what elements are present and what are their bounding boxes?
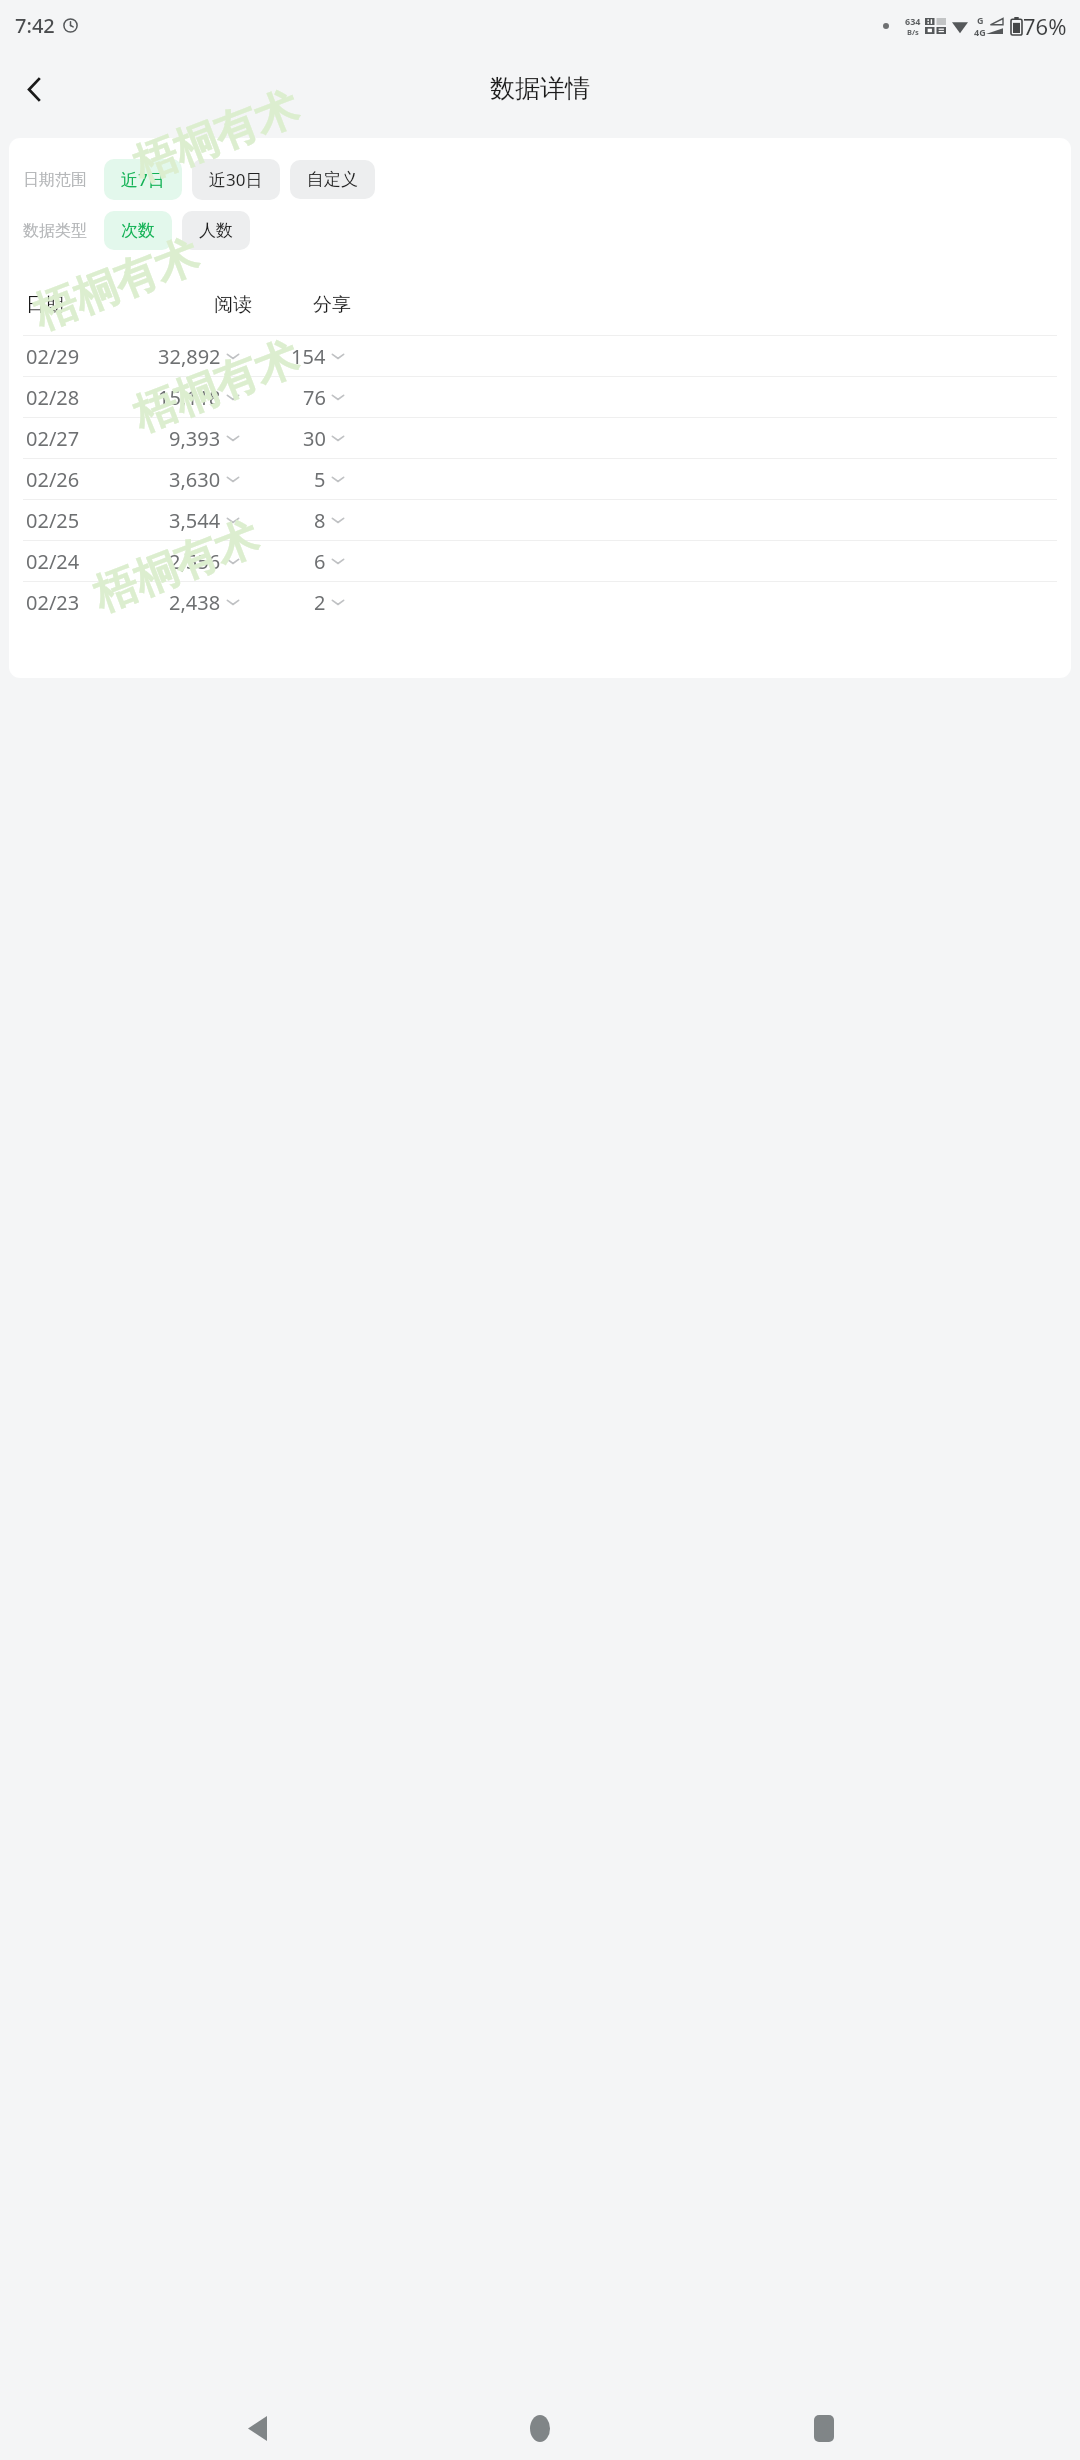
staticText: 32,892 <box>158 343 221 370</box>
staticText: 76 <box>303 384 326 411</box>
staticText: 634 <box>905 15 921 27</box>
staticText: 日期范围 <box>23 170 87 190</box>
staticText: 9,393 <box>169 425 221 452</box>
staticText: 次数 <box>121 220 155 241</box>
staticText: 2 <box>314 589 326 616</box>
staticText: 近30日 <box>209 168 263 191</box>
staticText: 02/28 <box>26 384 80 411</box>
button[interactable]: Recents <box>797 2401 851 2455</box>
staticText: 近7日 <box>121 168 165 191</box>
staticText: 76% <box>1023 11 1067 41</box>
staticText: 梧桐有术 <box>86 511 266 623</box>
staticText: G <box>977 14 984 26</box>
button[interactable]: Home <box>513 2401 567 2455</box>
button[interactable]: 02/26 <box>9 459 1071 499</box>
staticText: 4G <box>974 26 986 38</box>
staticText: B/s <box>907 27 919 37</box>
staticText: 02/27 <box>26 425 80 452</box>
staticText: 梧桐有术 <box>126 81 306 193</box>
button[interactable]: 人数 <box>182 211 250 250</box>
staticText: 8 <box>314 507 326 534</box>
button[interactable]: 02/25 <box>9 500 1071 540</box>
button[interactable]: 02/27 <box>9 418 1071 458</box>
staticText: 数据类型 <box>23 221 87 241</box>
button[interactable]: Back <box>4 58 66 120</box>
staticText: 30 <box>303 425 326 452</box>
staticText: 阅读 <box>214 293 252 317</box>
staticText: 02/26 <box>26 466 80 493</box>
staticText: 3,630 <box>169 466 221 493</box>
button[interactable]: 自定义 <box>290 160 375 199</box>
staticText: 02/29 <box>26 343 80 370</box>
button[interactable]: 02/28 <box>9 377 1071 417</box>
button[interactable]: 次数 <box>104 211 172 250</box>
staticText: 7:42 <box>15 12 55 39</box>
staticText: 日期 <box>26 293 64 317</box>
staticText: 数据详情 <box>490 73 590 104</box>
staticText: 自定义 <box>307 169 358 190</box>
staticText: 梧桐有术 <box>126 331 306 443</box>
staticText: 3,544 <box>169 507 221 534</box>
staticText: 5 <box>314 466 326 493</box>
button[interactable]: 02/29 <box>9 336 1071 376</box>
staticText: 梧桐有术 <box>26 229 206 341</box>
staticText: 154 <box>291 343 326 370</box>
staticText: 15,118 <box>158 384 221 411</box>
staticText: 分享 <box>313 293 351 317</box>
button[interactable]: 02/24 <box>9 541 1071 581</box>
button[interactable]: 02/23 <box>9 582 1071 622</box>
button[interactable]: 近7日 <box>104 159 182 200</box>
staticText: 02/24 <box>26 548 80 575</box>
button[interactable]: 近30日 <box>192 159 280 200</box>
staticText: 02/23 <box>26 589 80 616</box>
staticText: 2,556 <box>169 548 221 575</box>
button[interactable]: Back <box>230 2401 284 2455</box>
staticText: 6 <box>314 548 326 575</box>
staticText: 2,438 <box>169 589 221 616</box>
staticText: 02/25 <box>26 507 80 534</box>
staticText: 人数 <box>199 220 233 241</box>
